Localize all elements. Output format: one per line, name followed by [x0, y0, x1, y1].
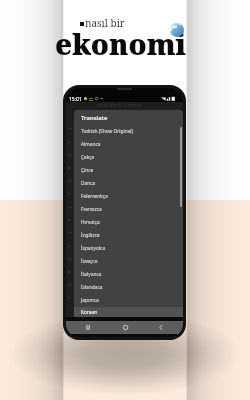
button[interactable]: Turkish (Show Original) [74, 125, 183, 138]
staticText: Turkish (Show Original) [81, 128, 134, 135]
button[interactable]: Çince [74, 164, 183, 177]
staticText: Korean [81, 309, 98, 316]
staticText: İspanyolca [81, 245, 106, 252]
staticText: Danca [81, 180, 96, 187]
button[interactable]: İtalyanca [74, 268, 183, 281]
staticText: Çekçe [81, 154, 95, 161]
button[interactable]: Almanca [74, 138, 183, 151]
staticText: 15:01 [69, 96, 82, 103]
button[interactable]: Japonca [74, 294, 183, 307]
staticText: İzlandaca [81, 284, 103, 291]
button[interactable]: Çekçe [74, 151, 183, 164]
staticText: Fransızca [81, 206, 102, 213]
button[interactable]: İspanyolca [74, 242, 183, 255]
staticText: Translate [81, 114, 108, 122]
button[interactable]: Danca [74, 177, 183, 190]
button[interactable]: Fransızca [74, 203, 183, 216]
staticText: Almanca [81, 141, 101, 148]
staticText: İsveçce [81, 258, 98, 265]
staticText: İngilizce [81, 232, 100, 239]
button[interactable]: İzlandaca [74, 281, 183, 294]
button[interactable]: Hırvatça [74, 216, 183, 229]
staticText: about:blank - Chrome [96, 102, 142, 108]
button[interactable]: Back [146, 321, 176, 334]
button[interactable]: İsveçce [74, 255, 183, 268]
staticText: Hırvatça [81, 219, 100, 226]
button[interactable]: Recent apps [73, 321, 103, 334]
button[interactable]: Home [110, 321, 140, 334]
button[interactable]: Korean [74, 307, 183, 317]
staticText: Japonca [81, 297, 99, 304]
button[interactable]: Felemenkçe [74, 190, 183, 203]
button[interactable]: İngilizce [74, 229, 183, 242]
staticText: nasıl bir [85, 16, 125, 30]
staticText: ekonomi [55, 25, 187, 64]
staticText: İtalyanca [81, 271, 102, 278]
staticText: Çince [81, 167, 94, 174]
staticText: Felemenkçe [81, 193, 108, 200]
